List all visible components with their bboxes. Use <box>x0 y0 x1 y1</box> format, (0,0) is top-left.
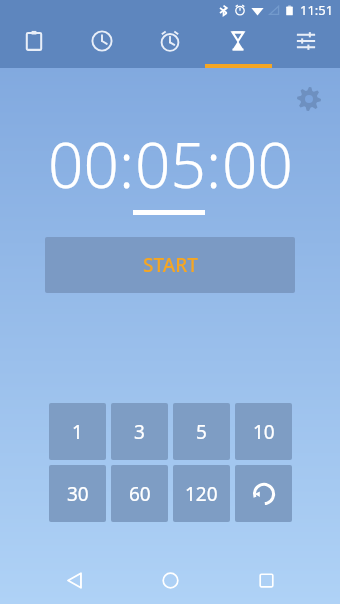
button[interactable]: 120 <box>173 465 230 522</box>
button[interactable]: 3 <box>111 403 168 460</box>
staticText: 11:51 <box>300 1 334 19</box>
button[interactable]: 00 <box>48 122 119 206</box>
staticText: 5 <box>196 419 207 445</box>
staticText: : <box>119 122 135 206</box>
staticText: : <box>206 122 222 206</box>
staticText: 120 <box>185 481 218 507</box>
button[interactable]: 05 <box>135 122 206 206</box>
button[interactable]: START <box>45 237 295 293</box>
button[interactable]: Back <box>52 558 96 602</box>
staticText: 1 <box>72 419 83 445</box>
button[interactable]: Alarm <box>136 20 204 68</box>
button[interactable]: 5 <box>173 403 230 460</box>
staticText: 10 <box>253 419 275 445</box>
button[interactable]: Settings <box>292 82 326 116</box>
button[interactable]: 10 <box>235 403 292 460</box>
button[interactable]: Settings <box>272 20 340 68</box>
button[interactable]: Home <box>148 558 192 602</box>
button[interactable]: 30 <box>49 465 106 522</box>
button[interactable]: Reset <box>235 465 292 522</box>
staticText: 3 <box>134 419 145 445</box>
button[interactable]: Clock <box>68 20 136 68</box>
staticText: 00 <box>222 122 293 206</box>
button[interactable]: 60 <box>111 465 168 522</box>
button[interactable]: 1 <box>49 403 106 460</box>
button[interactable]: Notes <box>0 20 68 68</box>
staticText: 00 <box>48 122 119 206</box>
staticText: 05 <box>135 122 206 206</box>
button[interactable]: Recents <box>244 558 288 602</box>
button[interactable]: 00 <box>222 122 293 206</box>
staticText: 30 <box>67 481 89 507</box>
staticText: START <box>143 252 198 278</box>
staticText: 60 <box>129 481 151 507</box>
button[interactable]: Timer <box>204 20 272 68</box>
